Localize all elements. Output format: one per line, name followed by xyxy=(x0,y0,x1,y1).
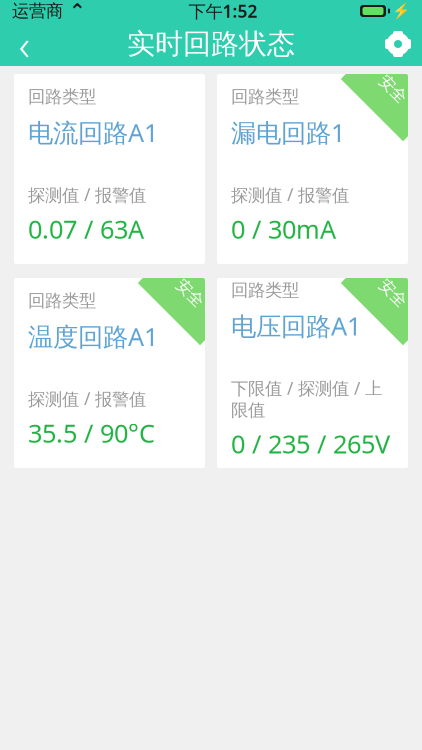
button[interactable]: 回路类型 xyxy=(14,74,205,264)
staticText: 探测值 / 报警值 xyxy=(28,183,146,206)
staticText: 电流回路A1 xyxy=(28,115,158,149)
staticText: 电压回路A1 xyxy=(231,309,361,342)
button[interactable]: 回路类型 xyxy=(217,278,408,468)
staticText: 回路类型 xyxy=(28,86,96,107)
staticText: 漏电回路1 xyxy=(231,115,345,149)
staticText: ⚡ xyxy=(392,3,410,19)
button[interactable]: Settings xyxy=(374,22,422,66)
staticText: 下午1:52 xyxy=(188,0,257,22)
staticText: 安全 xyxy=(377,79,409,99)
button[interactable]: 回路类型 xyxy=(14,278,205,468)
staticText: ‹ xyxy=(18,16,29,72)
staticText: 回路类型 xyxy=(28,290,96,311)
staticText: 0 / 235 / 265V xyxy=(231,427,390,460)
staticText: 实时回路状态 xyxy=(127,27,295,61)
staticText: 下限值 / 探测值 / 上限值 xyxy=(231,376,382,421)
staticText: ⌃ xyxy=(69,0,86,22)
staticText: 回路类型 xyxy=(231,86,299,107)
staticText: 探测值 / 报警值 xyxy=(28,387,146,410)
staticText: 运营商 xyxy=(12,0,63,22)
button[interactable]: Back xyxy=(0,22,48,66)
staticText: 安全 xyxy=(377,283,409,303)
button[interactable]: 回路类型 xyxy=(217,74,408,264)
staticText: 安全 xyxy=(174,283,206,303)
staticText: 35.5 / 90°C xyxy=(28,416,155,450)
staticText: 0 / 30mA xyxy=(231,212,336,246)
staticText: 回路类型 xyxy=(231,280,299,301)
staticText: 温度回路A1 xyxy=(28,319,158,353)
staticText: 0.07 / 63A xyxy=(28,212,144,246)
staticText: 探测值 / 报警值 xyxy=(231,183,349,206)
